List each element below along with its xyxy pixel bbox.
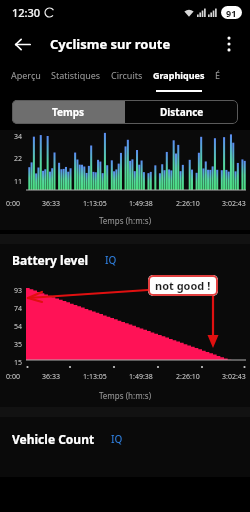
staticText: Distance: [160, 105, 204, 119]
staticText: Cyclisme sur route: [50, 35, 171, 53]
staticText: Temps (h:m:s): [0, 390, 250, 401]
button[interactable]: Aperçu: [6, 64, 46, 94]
staticText: IQ: [105, 253, 117, 267]
button[interactable]: More options: [214, 29, 244, 59]
staticText: IQ: [111, 432, 123, 446]
staticText: 2:26:10: [176, 372, 200, 382]
staticText: Aperçu: [11, 69, 41, 81]
staticText: 36:33: [42, 199, 60, 209]
staticText: Circuits: [111, 69, 143, 81]
staticText: Vehicle Count: [12, 431, 95, 447]
staticText: 1:13:05: [83, 199, 107, 209]
button[interactable]: Graphiques: [148, 64, 210, 94]
staticText: 34: [14, 132, 23, 142]
button[interactable]: Battery level: [12, 252, 250, 268]
staticText: É: [215, 69, 221, 81]
staticText: 0:00: [6, 199, 20, 209]
staticText: 1:49:38: [129, 372, 153, 382]
staticText: 3:02:43: [222, 372, 246, 382]
button[interactable]: Vehicle Count: [12, 431, 250, 447]
staticText: 74: [14, 304, 23, 314]
staticText: 11: [14, 177, 23, 187]
button[interactable]: Temps: [12, 100, 125, 124]
staticText: 1:13:05: [83, 372, 107, 382]
staticText: 12:30: [12, 5, 41, 20]
button[interactable]: Distance: [125, 100, 238, 124]
staticText: Temps (h:m:s): [0, 215, 250, 226]
staticText: Temps: [52, 105, 85, 119]
staticText: 2:26:10: [176, 199, 200, 209]
staticText: 36:33: [42, 372, 60, 382]
staticText: 91: [226, 7, 237, 19]
staticText: 0:00: [6, 372, 20, 382]
staticText: 15: [14, 358, 23, 368]
staticText: not good !: [155, 278, 211, 293]
staticText: 1:49:38: [129, 199, 153, 209]
button[interactable]: Statistiques: [46, 64, 106, 94]
staticText: 22: [14, 154, 23, 164]
staticText: 3:02:43: [222, 199, 246, 209]
button[interactable]: É: [210, 64, 226, 94]
staticText: 93: [14, 286, 23, 296]
staticText: Statistiques: [51, 69, 101, 81]
staticText: Battery level: [12, 252, 89, 268]
button[interactable]: Circuits: [106, 64, 148, 94]
staticText: 35: [14, 340, 23, 350]
button[interactable]: Back: [6, 28, 38, 60]
staticText: Graphiques: [153, 69, 205, 81]
staticText: 54: [14, 322, 23, 332]
